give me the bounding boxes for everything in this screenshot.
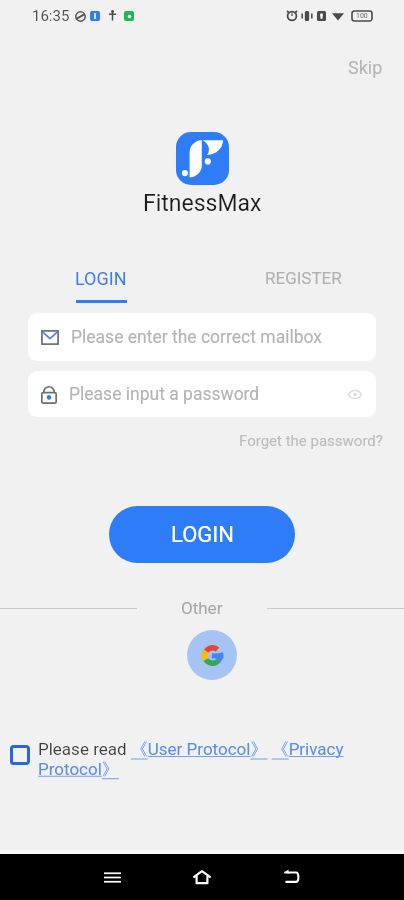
button[interactable]: Show password bbox=[336, 375, 374, 413]
button[interactable]: Please enter the correct mailbox bbox=[28, 313, 376, 361]
button[interactable]: Forget the password? bbox=[229, 428, 393, 454]
button[interactable]: Please read 《User Protocol》 《Privacy Pro… bbox=[38, 739, 346, 780]
staticText: FitnessMax bbox=[143, 190, 262, 217]
staticText: 16:35 bbox=[32, 7, 70, 25]
button[interactable]: REGISTER bbox=[241, 264, 366, 292]
button[interactable]: Recents bbox=[89, 854, 135, 900]
staticText: LOGIN bbox=[171, 522, 234, 548]
staticText: Skip bbox=[348, 57, 383, 78]
button[interactable]: Home bbox=[179, 854, 225, 900]
staticText: Please enter the correct mailbox bbox=[71, 327, 322, 348]
staticText: 100 bbox=[356, 12, 368, 20]
button[interactable]: Skip bbox=[336, 52, 395, 83]
button[interactable]: Please input a password bbox=[28, 371, 376, 417]
staticText: Please input a password bbox=[69, 384, 336, 405]
button[interactable]: Sign in with Google bbox=[187, 630, 237, 680]
staticText: LOGIN bbox=[75, 268, 127, 289]
button[interactable]: LOGIN bbox=[51, 264, 151, 307]
button[interactable]: Agree to protocol bbox=[10, 745, 30, 765]
staticText: Other bbox=[181, 598, 223, 618]
staticText: REGISTER bbox=[265, 268, 342, 288]
staticText: Forget the password? bbox=[239, 432, 383, 450]
button[interactable]: LOGIN bbox=[109, 506, 295, 563]
button[interactable]: Back bbox=[269, 854, 315, 900]
